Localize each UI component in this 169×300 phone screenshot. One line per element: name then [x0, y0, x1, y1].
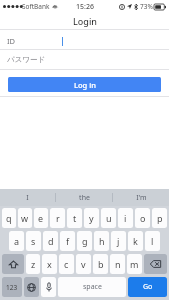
staticText: a	[14, 235, 20, 247]
staticText: 123	[6, 283, 18, 292]
staticText: b	[98, 258, 104, 270]
button[interactable]: Shift	[2, 254, 24, 274]
button[interactable]: g	[77, 231, 92, 251]
staticText: m	[130, 258, 139, 270]
staticText: y	[89, 212, 94, 224]
staticText: h	[99, 235, 105, 247]
staticText: ID	[7, 36, 16, 46]
staticText: o	[140, 212, 146, 224]
button[interactable]: v	[76, 254, 91, 274]
staticText: e	[38, 212, 44, 224]
button[interactable]: m	[127, 254, 142, 274]
button[interactable]: x	[42, 254, 57, 274]
staticText: p	[157, 212, 163, 224]
button[interactable]: Change keyboard	[24, 277, 39, 297]
staticText: I	[26, 193, 29, 203]
staticText: w	[21, 212, 29, 224]
button[interactable]: b	[93, 254, 108, 274]
button[interactable]: the	[56, 189, 112, 206]
staticText: v	[81, 258, 86, 270]
button[interactable]: r	[50, 208, 65, 228]
staticText: j	[117, 235, 120, 247]
button[interactable]: Voice input	[41, 277, 56, 297]
staticText: 15:26	[76, 2, 94, 12]
button[interactable]: k	[128, 231, 143, 251]
staticText: SoftBank	[22, 2, 50, 11]
button[interactable]: j	[111, 231, 126, 251]
staticText: q	[6, 212, 12, 224]
button[interactable]: h	[94, 231, 109, 251]
staticText: u	[106, 212, 112, 224]
button[interactable]: i	[118, 208, 133, 228]
button[interactable]: Go	[128, 277, 167, 297]
button[interactable]: e	[34, 208, 48, 228]
staticText: 73%	[140, 2, 153, 11]
button[interactable]: l	[145, 231, 160, 251]
staticText: g	[82, 235, 88, 247]
staticText: z	[31, 258, 36, 270]
button[interactable]: f	[60, 231, 75, 251]
button[interactable]: u	[101, 208, 116, 228]
staticText: l	[151, 235, 154, 247]
button[interactable]: I	[0, 189, 55, 206]
button[interactable]: d	[43, 231, 58, 251]
button[interactable]: n	[110, 254, 125, 274]
button[interactable]: w	[18, 208, 32, 228]
staticText: d	[48, 235, 54, 247]
staticText: パスワード	[7, 55, 46, 64]
staticText: Login	[73, 15, 97, 27]
staticText: r	[56, 212, 60, 224]
button[interactable]: space	[58, 277, 126, 297]
button[interactable]: ID	[0, 33, 169, 49]
button[interactable]: I'm	[113, 189, 169, 206]
button[interactable]: o	[135, 208, 150, 228]
staticText: n	[115, 258, 121, 270]
button[interactable]: Backspace	[144, 254, 167, 274]
button[interactable]: c	[59, 254, 74, 274]
staticText: Go	[143, 282, 153, 292]
staticText: t	[73, 212, 77, 224]
button[interactable]: パスワード	[0, 50, 169, 69]
staticText: i	[124, 212, 127, 224]
button[interactable]: Log in	[8, 77, 161, 92]
button[interactable]: p	[152, 208, 167, 228]
staticText: c	[64, 258, 69, 270]
button[interactable]: q	[2, 208, 16, 228]
button[interactable]: y	[84, 208, 99, 228]
staticText: I'm	[136, 193, 147, 203]
staticText: the	[79, 193, 90, 203]
button[interactable]: t	[67, 208, 82, 228]
button[interactable]: a	[9, 231, 24, 251]
staticText: space	[83, 282, 102, 292]
button[interactable]: s	[26, 231, 41, 251]
button[interactable]: z	[26, 254, 40, 274]
button[interactable]: 123	[2, 277, 22, 297]
staticText: s	[31, 235, 36, 247]
staticText: f	[66, 235, 70, 247]
staticText: k	[133, 235, 138, 247]
staticText: Log in	[74, 80, 96, 90]
staticText: x	[47, 258, 52, 270]
